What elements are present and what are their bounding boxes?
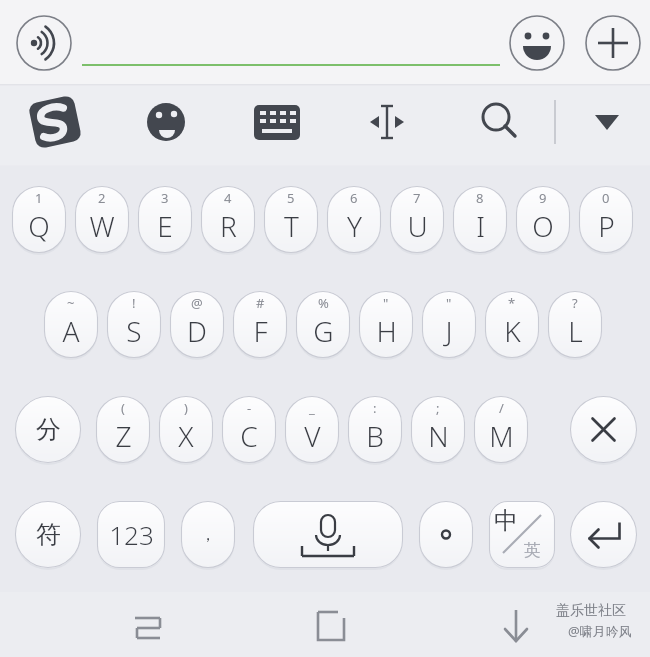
button[interactable]: )	[159, 396, 213, 463]
staticText: 符	[36, 519, 61, 550]
staticText: Q	[28, 207, 50, 245]
button[interactable]: Collapse toolbar	[579, 94, 635, 152]
staticText: N	[428, 417, 449, 455]
staticText: Y	[347, 207, 362, 245]
staticText: U	[407, 207, 428, 245]
button[interactable]: Recents	[118, 600, 178, 650]
button[interactable]: Emoji	[510, 16, 564, 70]
staticText: ;	[436, 399, 440, 417]
button[interactable]: 6	[327, 186, 381, 253]
staticText: :	[373, 399, 377, 417]
staticText: !	[132, 294, 136, 312]
button[interactable]: 4	[201, 186, 255, 253]
button[interactable]: Sogou menu	[27, 94, 83, 152]
staticText: C	[240, 417, 258, 455]
staticText: 1	[35, 189, 43, 207]
staticText: ?	[572, 294, 578, 312]
staticText: 0	[602, 189, 610, 207]
staticText: Z	[115, 417, 132, 455]
button[interactable]: (	[96, 396, 150, 463]
button[interactable]: 2	[75, 186, 129, 253]
staticText: 3	[161, 189, 169, 207]
staticText: M	[489, 417, 514, 455]
button[interactable]: #	[233, 291, 287, 358]
staticText: I	[476, 207, 485, 245]
button[interactable]: Text field	[80, 10, 500, 70]
staticText: #	[256, 294, 265, 312]
staticText: 分	[36, 414, 61, 445]
button[interactable]: Add	[586, 16, 640, 70]
button[interactable]: Chinese English toggle	[489, 501, 555, 568]
button[interactable]: 1	[12, 186, 66, 253]
staticText: -	[247, 399, 252, 417]
button[interactable]: 7	[390, 186, 444, 253]
staticText: 8	[476, 189, 484, 207]
staticText: O	[532, 207, 554, 245]
staticText: @	[191, 294, 203, 312]
button[interactable]: 9	[516, 186, 570, 253]
button[interactable]: @	[170, 291, 224, 358]
button[interactable]: 5	[264, 186, 318, 253]
staticText: 4	[224, 189, 232, 207]
button[interactable]: :	[348, 396, 402, 463]
staticText: 盖乐世社区	[556, 602, 626, 620]
button[interactable]: ?	[548, 291, 602, 358]
staticText: S	[126, 312, 142, 350]
button[interactable]: *	[485, 291, 539, 358]
staticText: X	[178, 417, 194, 455]
staticText: T	[284, 207, 299, 245]
button[interactable]: %	[296, 291, 350, 358]
staticText: W	[89, 207, 115, 245]
staticText: E	[157, 207, 173, 245]
button[interactable]: Home	[301, 600, 361, 650]
button[interactable]: ~	[44, 291, 98, 358]
staticText: 7	[413, 189, 421, 207]
button[interactable]: Numbers	[97, 501, 165, 568]
staticText: _	[309, 399, 315, 417]
staticText: 2	[98, 189, 106, 207]
staticText: K	[504, 312, 521, 350]
button[interactable]: 0	[579, 186, 633, 253]
staticText: P	[598, 207, 615, 245]
button[interactable]: /	[474, 396, 528, 463]
staticText: 5	[287, 189, 295, 207]
button[interactable]: "	[359, 291, 413, 358]
button[interactable]: Search	[472, 94, 528, 152]
button[interactable]: Comma	[181, 501, 235, 568]
staticText: 6	[350, 189, 358, 207]
staticText: )	[184, 399, 188, 417]
button[interactable]: Space	[253, 501, 403, 568]
staticText: G	[313, 312, 334, 350]
staticText: /	[499, 399, 504, 417]
button[interactable]: !	[107, 291, 161, 358]
staticText: L	[568, 312, 583, 350]
button[interactable]: Symbols	[15, 501, 81, 568]
button[interactable]: Separator	[15, 396, 81, 463]
button[interactable]: Hide keyboard	[486, 600, 546, 650]
staticText: H	[376, 312, 397, 350]
button[interactable]: Move cursor	[359, 94, 415, 152]
button[interactable]: Voice input	[17, 16, 71, 70]
staticText: ~	[67, 294, 75, 312]
button[interactable]: _	[285, 396, 339, 463]
button[interactable]: Enter	[570, 501, 637, 568]
staticText: 英	[524, 540, 541, 561]
staticText: J	[445, 312, 453, 350]
staticText: D	[187, 312, 207, 350]
button[interactable]: -	[222, 396, 276, 463]
button[interactable]: 8	[453, 186, 507, 253]
button[interactable]: Delete	[570, 396, 637, 463]
staticText: *	[508, 294, 516, 312]
button[interactable]: ;	[411, 396, 465, 463]
staticText: 中	[494, 506, 518, 536]
button[interactable]: Period	[419, 501, 473, 568]
staticText: F	[253, 312, 268, 350]
staticText: A	[62, 312, 80, 350]
button[interactable]: Keyboard layout	[249, 94, 305, 152]
staticText: @啸月吟风	[568, 622, 632, 640]
staticText: "	[446, 294, 452, 312]
button[interactable]: Stickers	[138, 94, 194, 152]
button[interactable]: 3	[138, 186, 192, 253]
button[interactable]: "	[422, 291, 476, 358]
staticText: B	[366, 417, 384, 455]
